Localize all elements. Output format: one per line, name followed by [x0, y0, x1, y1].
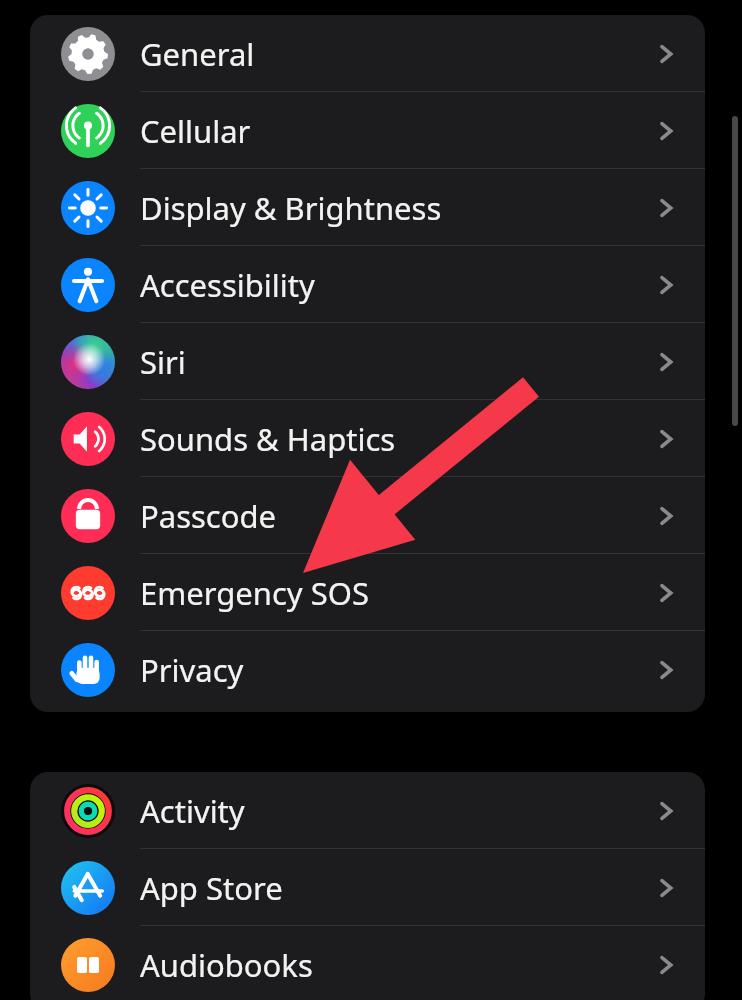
staticText: Sounds & Haptics [140, 418, 396, 460]
staticText: Display & Brightness [140, 187, 442, 229]
button[interactable]: App Store [30, 849, 705, 926]
button[interactable]: Siri [30, 323, 705, 400]
button[interactable]: Sounds & Haptics [30, 400, 705, 477]
staticText: Passcode [140, 495, 277, 537]
staticText: Audiobooks [140, 944, 313, 986]
button[interactable]: Passcode [30, 477, 705, 554]
button[interactable]: Audiobooks [30, 926, 705, 1000]
button[interactable]: Activity [30, 772, 705, 849]
staticText: Privacy [140, 649, 244, 691]
button[interactable]: Emergency SOS [30, 554, 705, 631]
button[interactable]: Privacy [30, 631, 705, 708]
button[interactable]: Accessibility [30, 246, 705, 323]
staticText: App Store [140, 867, 283, 909]
button[interactable]: Cellular [30, 92, 705, 169]
staticText: Accessibility [140, 264, 315, 306]
button[interactable]: General [30, 15, 705, 92]
staticText: Siri [140, 341, 186, 383]
staticText: General [140, 33, 255, 75]
staticText: Emergency SOS [140, 572, 369, 614]
staticText: Activity [140, 790, 245, 832]
button[interactable]: Display & Brightness [30, 169, 705, 246]
staticText: Cellular [140, 110, 251, 152]
